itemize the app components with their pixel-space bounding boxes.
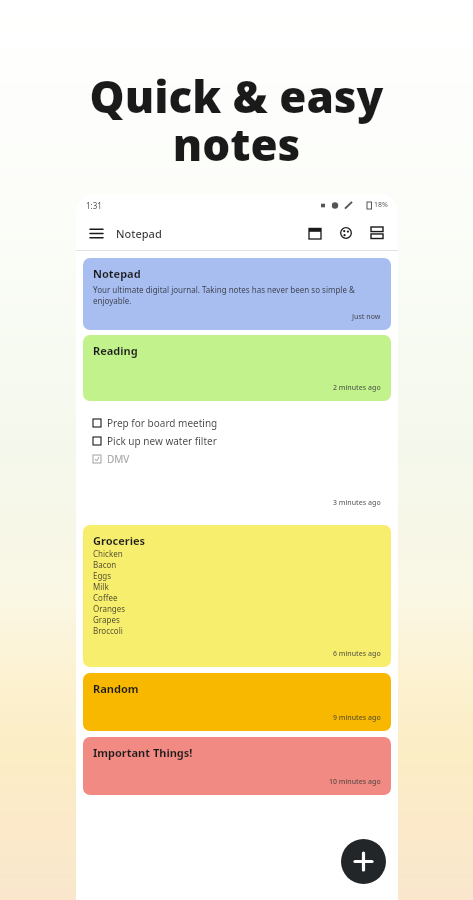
button[interactable]: Add note — [341, 839, 386, 884]
staticText: Eggs — [93, 570, 112, 581]
staticText: Coffee — [93, 592, 118, 603]
staticText: Your ultimate digital journal. Taking no… — [93, 284, 381, 306]
button[interactable]: DMV — [93, 450, 381, 468]
staticText: Grapes — [93, 614, 120, 625]
button[interactable]: Menu — [86, 223, 106, 243]
button[interactable]: Groceries — [83, 525, 391, 667]
staticText: 18% — [374, 200, 388, 210]
button[interactable]: Calendar — [304, 222, 326, 244]
staticText: Bacon — [93, 559, 117, 570]
button[interactable]: Theme — [335, 222, 357, 244]
staticText: 1:31 — [86, 200, 102, 211]
staticText: Reading — [93, 343, 138, 358]
staticText: 6 minutes ago — [333, 649, 381, 659]
staticText: 3 minutes ago — [333, 498, 381, 508]
button[interactable]: Notepad — [83, 258, 391, 330]
staticText: Chicken — [93, 548, 123, 559]
button[interactable]: Important Things! — [83, 737, 391, 795]
staticText: Just now — [352, 312, 381, 322]
staticText: 10 minutes ago — [329, 777, 381, 787]
staticText: 9 minutes ago — [333, 713, 381, 723]
staticText: Important Things! — [93, 745, 193, 760]
button[interactable]: Pick up new water filter — [93, 432, 381, 450]
staticText: 2 minutes ago — [333, 383, 381, 393]
staticText: Milk — [93, 581, 109, 592]
staticText: Random — [93, 681, 139, 696]
staticText: DMV — [107, 452, 130, 466]
staticText: Quick & easy notes — [14, 66, 459, 174]
button[interactable]: Prep for board meeting — [93, 414, 381, 432]
staticText: Groceries — [93, 533, 146, 548]
staticText: Notepad — [116, 226, 162, 241]
button[interactable]: Prep for board meeting — [83, 406, 391, 516]
button[interactable]: Reading — [83, 335, 391, 401]
staticText: Notepad — [93, 266, 141, 281]
button[interactable]: Layout — [366, 222, 388, 244]
staticText: Oranges — [93, 603, 126, 614]
staticText: Pick up new water filter — [107, 434, 217, 448]
staticText: Broccoli — [93, 625, 123, 636]
button[interactable]: Random — [83, 673, 391, 731]
staticText: Prep for board meeting — [107, 416, 218, 430]
